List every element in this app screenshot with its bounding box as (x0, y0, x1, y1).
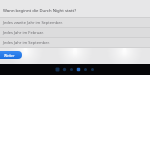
button[interactable]: Active (76, 67, 81, 72)
button[interactable]: Weiter (0, 51, 22, 59)
button[interactable]: Back (62, 67, 67, 72)
button[interactable]: Overview (55, 67, 60, 72)
button[interactable]: Jedes Jahr im Februar. (0, 28, 150, 37)
staticText: Jedes zweite Jahr im September. (3, 20, 63, 25)
button[interactable]: Home (69, 67, 74, 72)
staticText: Wann beginnt die Durch Night statt? (3, 8, 77, 14)
button[interactable]: Jedes Jahr im September. (0, 38, 150, 47)
staticText: Weiter (4, 53, 15, 58)
button[interactable]: Apps (83, 67, 88, 72)
button[interactable]: More (90, 67, 95, 72)
staticText: Jedes Jahr im Februar. (3, 30, 44, 35)
button[interactable]: Jedes zweite Jahr im September. (0, 18, 150, 27)
staticText: Jedes Jahr im September. (3, 40, 50, 45)
